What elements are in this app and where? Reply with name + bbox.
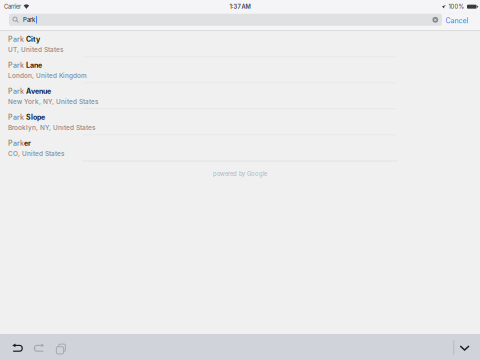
staticText: Avenue — [26, 87, 51, 95]
staticText: Park — [8, 87, 26, 95]
staticText: New York, NY, United States — [8, 98, 98, 105]
staticText: 1:37 AM — [229, 3, 250, 10]
staticText: Park — [8, 113, 26, 121]
staticText: Park — [8, 139, 24, 147]
staticText: Park — [8, 61, 26, 69]
staticText: Park — [8, 35, 26, 43]
button[interactable]: Redo — [28, 338, 50, 358]
button[interactable]: Undo — [6, 338, 28, 358]
staticText: Park — [23, 16, 35, 23]
button[interactable]: Park — [0, 31, 480, 57]
staticText: Slope — [26, 113, 45, 121]
button[interactable]: Park — [0, 109, 480, 135]
button[interactable]: Park — [0, 57, 480, 83]
staticText: Brooklyn, NY, United States — [8, 124, 95, 131]
staticText: City — [26, 35, 40, 43]
staticText: London, United Kingdom — [8, 72, 87, 79]
button[interactable]: Paste — [49, 338, 71, 358]
button[interactable]: Dismiss Keyboard — [454, 338, 476, 358]
staticText: 100% — [449, 3, 465, 10]
button[interactable]: Cancel — [440, 12, 474, 29]
staticText: Carrier — [4, 3, 21, 10]
button[interactable]: Park — [0, 135, 480, 161]
staticText: Lane — [26, 61, 42, 69]
button[interactable]: Park — [0, 83, 480, 109]
staticText: Cancel — [445, 16, 468, 25]
staticText: er — [24, 139, 31, 147]
staticText: CO, United States — [8, 150, 64, 157]
staticText: UT, United States — [8, 46, 63, 53]
staticText: powered by Google — [213, 170, 267, 177]
